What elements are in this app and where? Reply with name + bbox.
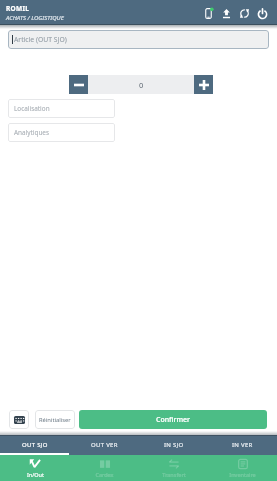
button[interactable]: Confirmer	[79, 410, 267, 429]
staticText: Réinitialiser	[39, 416, 71, 424]
staticText: Analytiques	[14, 128, 50, 137]
staticText: ROMIL	[6, 4, 30, 13]
button[interactable]: Analytiques	[8, 123, 115, 142]
button[interactable]: Keyboard	[9, 410, 29, 429]
staticText: OUT VER	[91, 441, 118, 449]
button[interactable]: Power	[253, 4, 271, 22]
staticText: Confirmer	[156, 415, 191, 425]
button[interactable]: Localisation	[8, 99, 115, 118]
button[interactable]: IN SJO	[139, 435, 208, 455]
button[interactable]: IN VER	[208, 435, 277, 455]
button[interactable]: Article (OUT SJO)	[8, 30, 269, 49]
button[interactable]: Sync	[235, 4, 253, 22]
staticText: IN VER	[232, 441, 253, 449]
staticText: 0	[139, 80, 144, 90]
staticText: Article (OUT SJO)	[14, 35, 67, 44]
button[interactable]: 0	[88, 75, 194, 94]
staticText: Inventaire	[229, 471, 256, 478]
staticText: Cardex	[95, 471, 114, 478]
button[interactable]: Increase quantity	[194, 75, 213, 94]
button[interactable]: In/Out	[0, 455, 70, 481]
staticText: OUT SJO	[22, 441, 48, 449]
button[interactable]: Cardex	[70, 455, 139, 481]
button[interactable]: Transfert	[139, 455, 208, 481]
button[interactable]: Device	[199, 4, 217, 22]
button[interactable]: Decrease quantity	[69, 75, 88, 94]
button[interactable]: OUT SJO	[0, 435, 70, 455]
staticText: Transfert	[162, 471, 186, 478]
staticText: In/Out	[27, 471, 44, 478]
button[interactable]: Inventaire	[208, 455, 277, 481]
button[interactable]: OUT VER	[70, 435, 139, 455]
staticText: IN SJO	[164, 441, 184, 449]
button[interactable]: Réinitialiser	[35, 410, 75, 429]
button[interactable]: Upload	[217, 4, 235, 22]
staticText: ACHATS / LOGISTIQUE	[6, 14, 64, 22]
staticText: Localisation	[14, 104, 50, 113]
